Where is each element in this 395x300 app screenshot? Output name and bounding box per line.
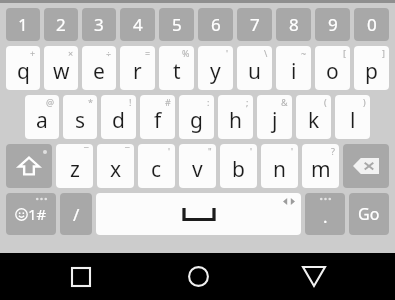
staticText: t: [173, 57, 181, 86]
staticText: .: [323, 205, 328, 228]
button[interactable]: (: [296, 95, 331, 139]
button[interactable]: ¯: [56, 144, 93, 188]
button[interactable]: 9: [315, 8, 350, 41]
staticText: !: [129, 96, 132, 108]
staticText: \: [264, 47, 268, 59]
staticText: s: [75, 106, 86, 135]
staticText: d: [112, 106, 125, 135]
staticText: ': [291, 145, 294, 157]
staticText: ¯: [84, 145, 89, 157]
button[interactable]: .: [305, 193, 345, 235]
staticText: 2: [56, 13, 66, 36]
button[interactable]: 4: [120, 8, 155, 41]
button[interactable]: !: [101, 95, 136, 139]
button[interactable]: Home: [163, 253, 233, 300]
button[interactable]: 5: [159, 8, 194, 41]
button[interactable]: ': [261, 144, 298, 188]
button[interactable]: :: [179, 95, 214, 139]
button[interactable]: ;: [218, 95, 253, 139]
staticText: ×: [68, 47, 74, 59]
button[interactable]: ': [198, 46, 233, 90]
button[interactable]: \: [237, 46, 272, 90]
staticText: y: [210, 57, 221, 86]
button[interactable]: [: [315, 46, 350, 90]
button[interactable]: Shift: [6, 144, 52, 188]
button[interactable]: +: [6, 46, 40, 90]
staticText: ;: [246, 96, 249, 108]
staticText: g: [190, 106, 203, 135]
staticText: 0: [367, 13, 377, 36]
staticText: &: [281, 96, 288, 108]
staticText: [: [343, 47, 346, 59]
staticText: =: [145, 47, 151, 59]
staticText: z: [70, 155, 80, 184]
staticText: q: [17, 57, 30, 86]
button[interactable]: ': [220, 144, 257, 188]
button[interactable]: ?: [302, 144, 339, 188]
button[interactable]: =: [120, 46, 155, 90]
staticText: e: [93, 57, 105, 86]
staticText: ~: [301, 47, 307, 59]
staticText: ]: [382, 47, 385, 59]
staticText: 1: [18, 13, 28, 36]
staticText: k: [308, 106, 320, 135]
staticText: 3: [94, 13, 104, 36]
button[interactable]: ÷: [82, 46, 116, 90]
staticText: 5: [172, 13, 182, 36]
button[interactable]: /: [60, 193, 92, 235]
staticText: :: [207, 96, 210, 108]
button[interactable]: &: [257, 95, 292, 139]
button[interactable]: Space: [96, 193, 301, 235]
staticText: 9: [328, 13, 338, 36]
button[interactable]: Go: [349, 193, 389, 235]
staticText: (: [324, 96, 327, 108]
staticText: *: [88, 96, 93, 108]
staticText: h: [229, 106, 242, 135]
button[interactable]: 8: [276, 8, 311, 41]
button[interactable]: @: [25, 95, 59, 139]
staticText: +: [30, 47, 36, 59]
button[interactable]: %: [159, 46, 194, 90]
button[interactable]: 6: [198, 8, 233, 41]
button[interactable]: Backspace: [343, 144, 389, 188]
staticText: /: [73, 203, 80, 226]
staticText: ): [363, 96, 366, 108]
staticText: Go: [358, 203, 380, 225]
staticText: ÷: [106, 47, 112, 59]
button[interactable]: 1: [6, 8, 40, 41]
button[interactable]: ~: [276, 46, 311, 90]
staticText: ?: [331, 145, 335, 157]
button[interactable]: *: [63, 95, 97, 139]
staticText: #: [165, 96, 171, 108]
staticText: ': [250, 145, 253, 157]
staticText: ': [168, 145, 171, 157]
button[interactable]: ¯: [97, 144, 134, 188]
button[interactable]: ": [179, 144, 216, 188]
button[interactable]: 2: [44, 8, 78, 41]
staticText: ": [208, 145, 212, 157]
button[interactable]: ): [335, 95, 370, 139]
staticText: p: [365, 57, 378, 86]
staticText: w: [53, 57, 70, 86]
staticText: v: [192, 155, 203, 184]
staticText: f: [154, 106, 162, 135]
staticText: n: [273, 155, 286, 184]
button[interactable]: 1#: [6, 193, 56, 235]
button[interactable]: Back: [279, 253, 349, 300]
staticText: c: [151, 155, 162, 184]
staticText: u: [248, 57, 261, 86]
button[interactable]: ×: [44, 46, 78, 90]
staticText: i: [291, 57, 297, 86]
staticText: m: [311, 155, 331, 184]
staticText: %: [182, 47, 190, 59]
button[interactable]: #: [140, 95, 175, 139]
button[interactable]: 7: [237, 8, 272, 41]
staticText: l: [350, 106, 356, 135]
button[interactable]: ]: [354, 46, 389, 90]
staticText: ¯: [125, 145, 130, 157]
button[interactable]: 3: [82, 8, 116, 41]
button[interactable]: 0: [354, 8, 389, 41]
button[interactable]: ': [138, 144, 175, 188]
button[interactable]: Recent apps: [46, 253, 116, 300]
staticText: ': [226, 47, 229, 59]
